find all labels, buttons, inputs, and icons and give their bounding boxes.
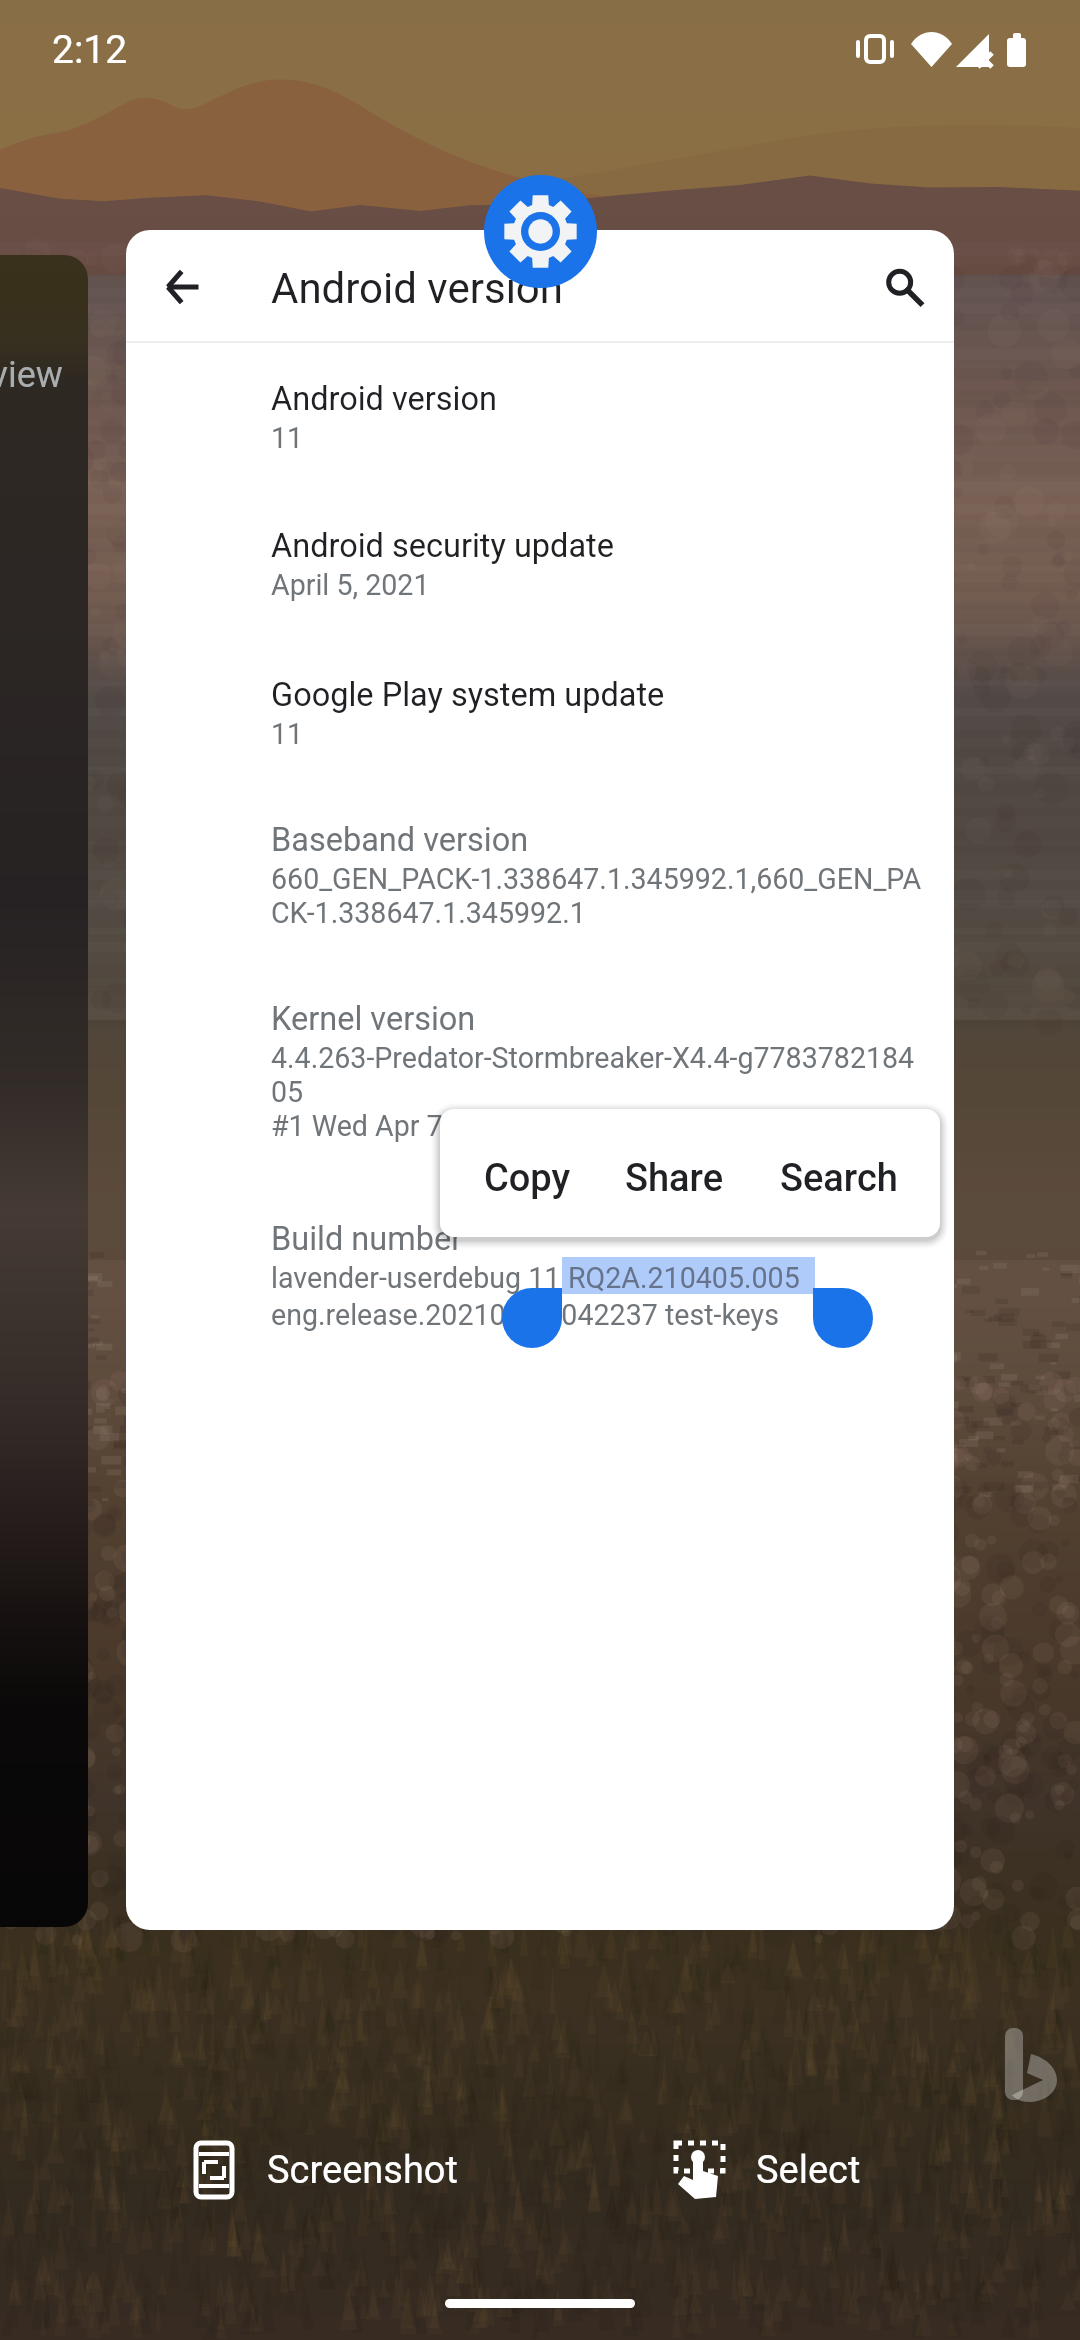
- staticText: 11: [271, 717, 304, 751]
- staticText: Google Play system update: [271, 676, 665, 714]
- button[interactable]: Overview: [0, 255, 88, 1927]
- staticText: 2:12: [52, 27, 128, 73]
- button[interactable]: Kernel version: [271, 1000, 954, 1143]
- button[interactable]: Select: [654, 2124, 881, 2216]
- staticText: 05: [271, 1075, 304, 1109]
- staticText: Copy: [484, 1156, 571, 1201]
- staticText: Share: [625, 1156, 724, 1201]
- staticText: April 5, 2021: [271, 568, 430, 602]
- staticText: Android security update: [271, 527, 614, 565]
- staticText: Baseband version: [271, 821, 529, 859]
- staticText: Screenshot: [267, 2148, 458, 2193]
- staticText: #1 Wed Apr 7: [271, 1109, 443, 1143]
- button[interactable]: Android security update: [271, 527, 954, 602]
- button[interactable]: Share: [603, 1114, 746, 1237]
- staticText: Overview: [0, 354, 63, 396]
- button[interactable]: Android version: [271, 380, 954, 455]
- button[interactable]: Settings app icon: [484, 175, 597, 288]
- button[interactable]: Copy: [462, 1114, 593, 1237]
- button[interactable]: Baseband version: [271, 821, 954, 930]
- staticText: RQ2A.210405.005: [568, 1261, 800, 1295]
- staticText: Kernel version: [271, 1000, 476, 1038]
- staticText: Build number: [271, 1220, 463, 1258]
- staticText: lavender-userdebug 11: [271, 1261, 561, 1295]
- staticText: Select: [756, 2148, 861, 2193]
- staticText: eng.release.20210407.042237 test-keys: [271, 1298, 779, 1332]
- staticText: CK-1.338647.1.345992.1: [271, 896, 586, 930]
- staticText: Android version: [271, 380, 497, 418]
- staticText: Search: [780, 1156, 898, 1201]
- button[interactable]: Navigate up: [145, 249, 221, 325]
- staticText: 4.4.263-Predator-Stormbreaker-X4.4-g7783…: [271, 1041, 915, 1075]
- button[interactable]: Screenshot: [175, 2124, 478, 2216]
- staticText: 11: [271, 421, 304, 455]
- staticText: 660_GEN_PACK-1.338647.1.345992.1,660_GEN…: [271, 862, 922, 896]
- button[interactable]: Search: [758, 1114, 920, 1237]
- button[interactable]: Google Play system update: [271, 676, 954, 751]
- staticText: Android version: [271, 264, 563, 313]
- button[interactable]: Search: [866, 249, 942, 325]
- button[interactable]: Build number: [271, 1220, 954, 1332]
